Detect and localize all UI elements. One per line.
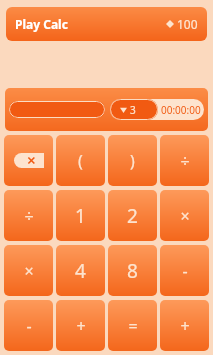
staticText: ÷: [180, 150, 190, 172]
button[interactable]: =: [108, 300, 157, 351]
button[interactable]: ×: [4, 245, 53, 296]
staticText: 1: [75, 203, 86, 229]
staticText: Play Calc: [15, 16, 68, 32]
staticText: +: [180, 315, 190, 337]
button[interactable]: ×: [160, 190, 209, 241]
button[interactable]: [9, 101, 105, 118]
staticText: 8: [127, 258, 138, 284]
staticText: ÷: [24, 205, 34, 227]
staticText: 00:00:00: [161, 103, 201, 117]
button[interactable]: (: [56, 135, 105, 186]
button[interactable]: -: [4, 300, 53, 351]
staticText: -: [182, 260, 188, 282]
staticText: +: [76, 315, 86, 337]
staticText: ×: [24, 260, 34, 282]
staticText: 100: [177, 16, 198, 32]
staticText: 4: [75, 258, 86, 284]
button[interactable]: 4: [56, 245, 105, 296]
staticText: -: [26, 315, 32, 337]
button[interactable]: 2: [108, 190, 157, 241]
staticText: ×: [180, 205, 190, 227]
button[interactable]: Play Calc: [6, 7, 207, 41]
button[interactable]: ÷: [4, 190, 53, 241]
staticText: =: [128, 315, 138, 337]
staticText: 2: [127, 203, 138, 229]
button[interactable]: Backspace: [4, 135, 53, 186]
button[interactable]: 1: [56, 190, 105, 241]
staticText: ): [130, 150, 135, 172]
button[interactable]: ÷: [160, 135, 209, 186]
staticText: (: [78, 150, 83, 172]
button[interactable]: +: [56, 300, 105, 351]
button[interactable]: +: [160, 300, 209, 351]
button[interactable]: 8: [108, 245, 157, 296]
staticText: 3: [130, 103, 136, 117]
button[interactable]: -: [160, 245, 209, 296]
button[interactable]: 3: [110, 99, 158, 120]
button[interactable]: ): [108, 135, 157, 186]
